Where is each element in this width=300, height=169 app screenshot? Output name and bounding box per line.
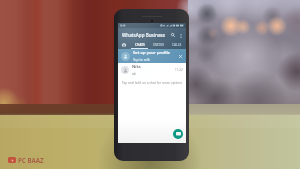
button[interactable]: PC BAAZ channel — [8, 156, 44, 164]
button[interactable]: Set up your profile — [118, 49, 186, 63]
button[interactable]: New chat — [173, 129, 183, 139]
button[interactable]: Niks — [118, 63, 186, 77]
staticText: CALLS — [172, 43, 182, 47]
staticText: CHATS — [135, 43, 145, 47]
button[interactable]: CHATS — [130, 41, 149, 49]
staticText: PC BAAZ — [18, 156, 44, 164]
button[interactable]: Search — [169, 31, 177, 39]
staticText: Niks — [132, 64, 141, 70]
button[interactable]: Dismiss — [177, 53, 184, 60]
staticText: Tap to edit — [133, 57, 150, 62]
staticText: STATUS — [153, 43, 165, 47]
staticText: ok — [132, 71, 136, 76]
staticText: WhatsApp Business — [122, 32, 166, 38]
button[interactable]: More options — [177, 32, 184, 39]
button[interactable]: Camera — [118, 41, 130, 49]
staticText: Tap and hold on a chat for more options — [118, 81, 186, 85]
button[interactable]: CALLS — [168, 41, 186, 49]
button[interactable]: STATUS — [149, 41, 168, 49]
staticText: Set up your profile — [133, 50, 170, 56]
staticText: 11:22 — [175, 68, 183, 72]
